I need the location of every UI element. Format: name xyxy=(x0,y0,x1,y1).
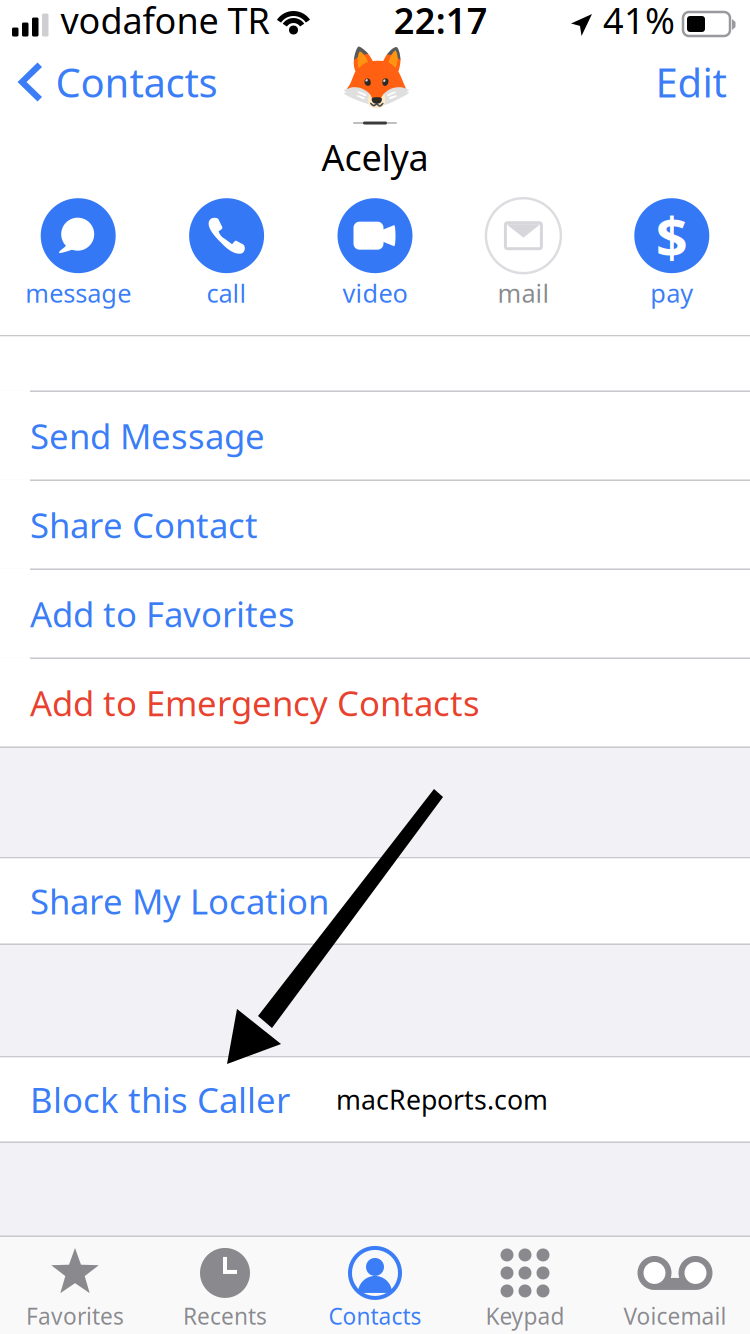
staticText: Share My Location xyxy=(30,878,329,924)
button[interactable]: Favorites xyxy=(0,1237,150,1334)
button[interactable]: Send Message xyxy=(0,392,750,479)
staticText: Add to Favorites xyxy=(30,591,295,637)
staticText: call xyxy=(207,276,247,310)
staticText: pay xyxy=(650,276,693,310)
button[interactable]: Share My Location xyxy=(0,858,750,943)
staticText: Send Message xyxy=(30,413,265,459)
button[interactable]: Edit xyxy=(631,53,750,111)
staticText: Recents xyxy=(183,1301,267,1331)
staticText: 22:17 xyxy=(394,0,488,44)
button[interactable]: Keypad xyxy=(450,1237,600,1334)
staticText: Favorites xyxy=(26,1301,124,1331)
button[interactable]: Add to Favorites xyxy=(0,570,750,657)
staticText: Add to Emergency Contacts xyxy=(30,680,480,726)
staticText: Edit xyxy=(655,55,726,108)
staticText: macReports.com xyxy=(336,1082,548,1117)
staticText: Share Contact xyxy=(30,502,258,548)
button[interactable]: Recents xyxy=(150,1237,300,1334)
staticText: Voicemail xyxy=(623,1301,726,1331)
staticText: vodafone TR xyxy=(60,0,269,44)
staticText: mail xyxy=(497,276,549,310)
button[interactable]: Contacts xyxy=(0,53,231,111)
staticText: message xyxy=(25,276,131,310)
button[interactable]: mail xyxy=(486,198,561,310)
staticText: video xyxy=(342,276,407,310)
button[interactable]: video xyxy=(337,198,412,310)
staticText: Acelya xyxy=(321,133,428,181)
button[interactable]: message xyxy=(25,198,131,310)
button[interactable]: $ xyxy=(634,198,709,310)
staticText: 🦊 xyxy=(338,43,413,111)
staticText: $ xyxy=(656,198,688,273)
button[interactable]: Add to Emergency Contacts xyxy=(0,659,750,746)
staticText: Contacts xyxy=(55,55,217,108)
staticText: 41% xyxy=(603,0,675,44)
staticText: Contacts xyxy=(328,1301,421,1331)
button[interactable]: Voicemail xyxy=(600,1237,750,1334)
button[interactable]: Block this Caller xyxy=(0,1057,750,1141)
staticText: Keypad xyxy=(485,1301,564,1331)
staticText: Block this Caller xyxy=(30,1076,290,1122)
button[interactable]: Share Contact xyxy=(0,481,750,568)
button[interactable]: call xyxy=(189,198,264,310)
button[interactable]: Contacts xyxy=(300,1237,450,1334)
